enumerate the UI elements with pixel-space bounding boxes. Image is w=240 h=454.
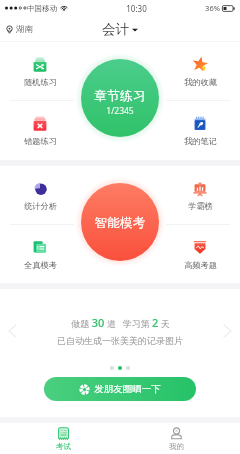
staticText: 会计	[102, 21, 129, 38]
button[interactable]: 高频考题	[160, 225, 240, 283]
button[interactable]: 随机练习	[0, 42, 80, 100]
staticText: 我的收藏	[184, 77, 217, 87]
staticText: 已自动生成一张美美的记录图片	[57, 335, 183, 346]
button[interactable]: 统计分析	[0, 166, 80, 224]
button[interactable]: Next	[224, 325, 231, 337]
button[interactable]: 智能模考	[81, 183, 159, 261]
staticText: 发朋友圈晒一下	[94, 383, 161, 395]
staticText: 我的	[169, 442, 184, 451]
staticText: 智能模考	[94, 215, 146, 231]
staticText: 湖南	[16, 24, 33, 35]
staticText: 做题 30 道 学习第 2 天	[71, 315, 170, 330]
staticText: 高频考题	[184, 260, 217, 270]
button[interactable]: 湖南	[5, 24, 33, 35]
staticText: 学霸榜	[188, 201, 213, 211]
button[interactable]: 章节练习	[81, 59, 159, 137]
button[interactable]: 学霸榜	[160, 166, 240, 224]
button[interactable]: 发朋友圈晒一下	[44, 377, 196, 401]
button[interactable]: 错题练习	[0, 101, 80, 160]
staticText: 中国移动	[27, 4, 57, 13]
staticText: 36%	[205, 3, 220, 13]
button[interactable]: 会计	[102, 21, 138, 38]
staticText: 我的笔记	[184, 136, 217, 146]
button[interactable]: 全真模考	[0, 225, 80, 283]
staticText: 全真模考	[24, 260, 57, 270]
staticText: 随机练习	[24, 77, 57, 87]
staticText: 1/2345	[106, 105, 134, 117]
staticText: 考试	[56, 442, 71, 451]
staticText: 错题练习	[24, 136, 57, 146]
staticText: 统计分析	[24, 201, 57, 211]
button[interactable]: 我的	[116, 423, 236, 454]
button[interactable]: Previous	[9, 325, 16, 337]
button[interactable]: 我的笔记	[160, 101, 240, 160]
button[interactable]: 考试	[3, 423, 123, 454]
staticText: 10:30	[126, 3, 147, 14]
button[interactable]: 我的收藏	[160, 42, 240, 100]
staticText: 章节练习	[94, 88, 146, 104]
